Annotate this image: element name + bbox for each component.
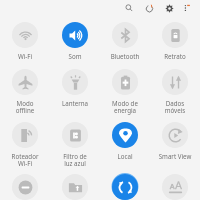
button[interactable]: Retrato [150,19,200,60]
button[interactable]: Local [100,119,150,160]
button[interactable]: Som [50,19,100,60]
button[interactable]: Modo de energia [100,66,150,115]
staticText: Som [50,52,100,60]
button[interactable]: Dados móveis [150,66,200,115]
button[interactable]: More options [180,1,194,15]
staticText: Bluetooth [100,52,150,60]
button[interactable] [50,172,100,200]
button[interactable]: Settings [161,0,177,16]
button[interactable] [0,172,50,200]
button[interactable]: Search [121,0,137,16]
staticText: Retrato [150,52,200,60]
staticText: Local [100,152,150,160]
button[interactable]: Smart View [150,119,200,160]
button[interactable]: Modo offline [0,66,50,115]
button[interactable]: Lanterna [50,66,100,107]
button[interactable]: Wi-Fi [0,19,50,60]
staticText: Smart View [150,152,200,160]
button[interactable] [150,172,200,200]
staticText: Dados móveis [150,99,200,115]
staticText: Roteador Wi-Fi [0,152,50,168]
staticText: Wi-Fi [0,52,50,60]
staticText: Filtro de luz azul [50,152,100,168]
staticText: Lanterna [50,99,100,107]
button[interactable]: Bluetooth [100,19,150,60]
staticText: Modo offline [0,99,50,115]
button[interactable]: Filtro de luz azul [50,119,100,168]
button[interactable] [100,172,150,200]
button[interactable]: Refresh [141,0,157,16]
button[interactable]: Roteador Wi-Fi [0,119,50,168]
staticText: Modo de energia [100,99,150,115]
